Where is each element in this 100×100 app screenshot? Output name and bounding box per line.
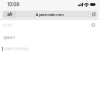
- staticText: 내용을 입력하세요: [4, 47, 29, 51]
- button[interactable]: aA: [3, 11, 16, 18]
- staticText: 10:09: [7, 2, 19, 7]
- button[interactable]: Reload: [91, 11, 97, 18]
- staticText: 댓글쓰기: [3, 35, 15, 40]
- staticText: pann.nate.com: [39, 12, 64, 17]
- staticText: 로그인: [3, 23, 12, 28]
- staticText: aA: [7, 12, 12, 17]
- button[interactable]: Settings: [91, 23, 95, 27]
- button[interactable]: 로그인: [3, 23, 12, 28]
